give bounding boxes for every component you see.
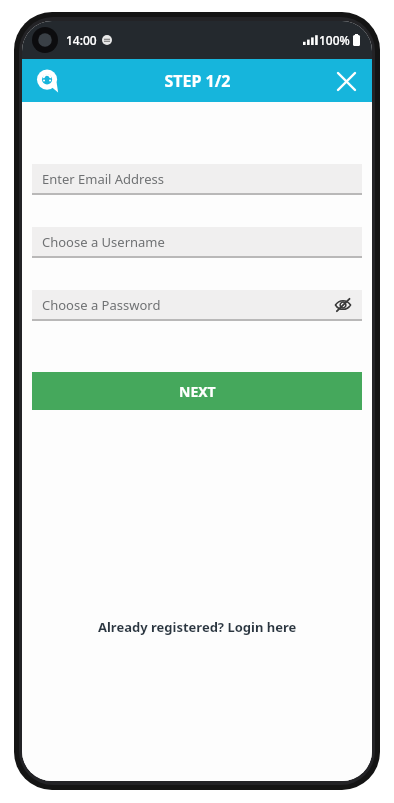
staticText: Enter Email Address bbox=[42, 170, 164, 188]
button[interactable]: Close bbox=[326, 61, 366, 101]
staticText: Already registered? Login here bbox=[98, 618, 297, 636]
other: Show password bbox=[333, 295, 353, 315]
button[interactable]: Choose a Password bbox=[32, 290, 362, 321]
staticText: Choose a Username bbox=[42, 233, 165, 251]
staticText: Choose a Password bbox=[42, 296, 161, 314]
button[interactable]: Already registered? Login here bbox=[88, 613, 307, 641]
staticText: STEP 1/2 bbox=[164, 70, 231, 92]
button[interactable]: Choose a Username bbox=[32, 227, 362, 258]
button[interactable]: Enter Email Address bbox=[32, 164, 362, 195]
staticText: 14:00 bbox=[66, 32, 97, 48]
staticText: NEXT bbox=[179, 382, 216, 401]
button[interactable]: App logo bbox=[30, 63, 66, 99]
staticText: 100% bbox=[319, 32, 350, 48]
button[interactable]: NEXT bbox=[32, 372, 362, 410]
